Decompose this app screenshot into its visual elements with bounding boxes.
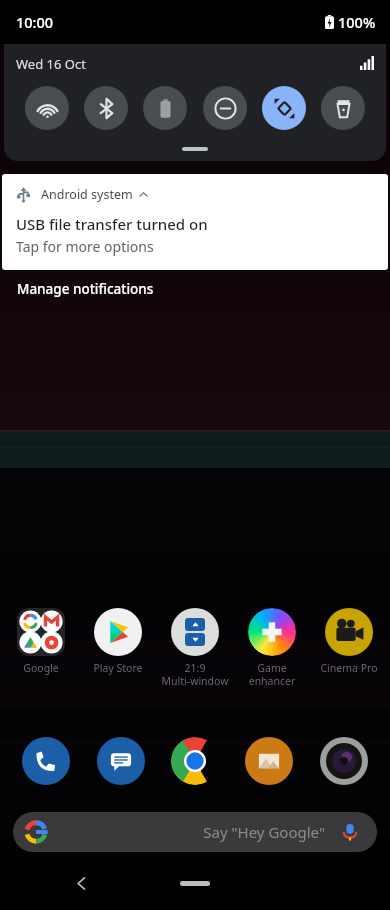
button[interactable]: Back [64,866,98,900]
button[interactable]: Expand quick settings [182,147,208,151]
staticText: Game enhancer [236,661,308,688]
button[interactable]: Game enhancer [236,608,308,688]
staticText: Wed 16 Oct [16,55,86,73]
staticText: Tap for more options [16,237,154,256]
staticText: Manage notifications [17,280,154,298]
button[interactable]: Camera [316,733,372,789]
button[interactable]: Play Store [82,608,154,675]
button[interactable]: Do not disturb [203,86,247,130]
staticText: Android system [41,186,133,203]
button[interactable]: Bluetooth [84,86,128,130]
button[interactable]: Wi-Fi [25,86,69,130]
button[interactable]: Manage notifications [0,270,390,308]
staticText: Cinema Pro [313,661,385,675]
button[interactable]: 21:9 Multi-window [159,608,231,688]
button[interactable]: Battery saver [143,86,187,130]
button[interactable]: Auto rotate [262,86,306,130]
button[interactable]: Phone [18,733,74,789]
staticText: 21:9 Multi-window [159,661,231,688]
staticText: Play Store [82,661,154,675]
button[interactable]: Android system [2,174,388,270]
button[interactable]: Photos [241,733,297,789]
staticText: 100% [338,12,376,32]
staticText: USB file transfer turned on [16,214,208,234]
staticText: 10:00 [16,12,54,32]
button[interactable]: Cinema Pro [313,608,385,675]
staticText: Google [5,661,77,675]
button[interactable]: Flashlight [321,86,365,130]
staticText: Say "Hey Google" [13,822,325,842]
button[interactable]: Home [173,872,217,894]
button[interactable]: Say "Hey Google" [13,812,377,852]
button[interactable]: Google [5,608,77,675]
button[interactable]: Chrome [167,733,223,789]
button[interactable]: Messages [93,733,149,789]
